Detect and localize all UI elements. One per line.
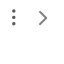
button[interactable]: More [0,0,64,64]
button[interactable]: Open [0,0,64,64]
